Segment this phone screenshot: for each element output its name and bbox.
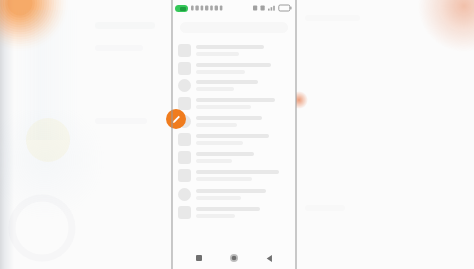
button[interactable]: Compose — [166, 109, 186, 129]
button[interactable]: Back — [261, 250, 277, 266]
button[interactable] — [172, 77, 296, 94]
button[interactable] — [172, 94, 296, 113]
button[interactable] — [172, 203, 296, 221]
button[interactable]: Recents — [191, 250, 207, 266]
button[interactable] — [172, 185, 296, 203]
button[interactable] — [172, 41, 296, 59]
button[interactable] — [172, 148, 296, 166]
button[interactable] — [172, 130, 296, 148]
button[interactable] — [172, 166, 296, 185]
button[interactable] — [172, 59, 296, 77]
button[interactable] — [172, 113, 296, 130]
button[interactable]: Home — [226, 250, 242, 266]
